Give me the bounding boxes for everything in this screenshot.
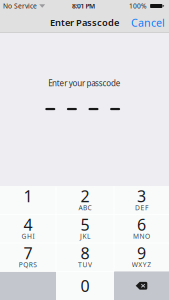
staticText: No Service: [3, 2, 37, 10]
staticText: MNO: [133, 232, 150, 240]
staticText: 2: [80, 185, 89, 207]
staticText: Cancel: [131, 15, 165, 30]
button[interactable]: 3: [114, 186, 169, 214]
staticText: GHI: [21, 232, 34, 240]
staticText: DEF: [135, 203, 148, 212]
staticText: 6: [137, 214, 146, 235]
staticText: Enter your passcode: [48, 78, 121, 88]
button[interactable]: 4: [0, 214, 56, 243]
button[interactable]: Cancel: [127, 12, 169, 33]
staticText: 5: [80, 214, 89, 235]
button[interactable]: 9: [114, 243, 169, 271]
staticText: PQRS: [19, 260, 37, 269]
button[interactable]: 0: [56, 271, 114, 300]
button[interactable]: 7: [0, 243, 56, 271]
staticText: 7: [23, 242, 32, 264]
staticText: 8:01 PM: [72, 2, 95, 10]
button[interactable]: 5: [56, 214, 114, 243]
button[interactable]: 2: [56, 186, 114, 214]
button[interactable]: 1: [0, 186, 56, 214]
staticText: 4: [23, 214, 32, 235]
staticText: Enter Passcode: [50, 16, 119, 29]
staticText: JKL: [80, 232, 90, 240]
button[interactable]: Delete: [114, 271, 169, 300]
staticText: 100%: [129, 2, 147, 10]
staticText: 8: [80, 242, 89, 264]
staticText: 1: [23, 185, 32, 207]
staticText: 3: [137, 185, 146, 207]
staticText: TUV: [78, 260, 92, 269]
button[interactable]: 8: [56, 243, 114, 271]
staticText: ABC: [78, 203, 91, 212]
staticText: WXYZ: [132, 260, 151, 269]
staticText: 0: [80, 275, 89, 296]
staticText: 9: [137, 242, 146, 264]
button[interactable]: 6: [114, 214, 169, 243]
